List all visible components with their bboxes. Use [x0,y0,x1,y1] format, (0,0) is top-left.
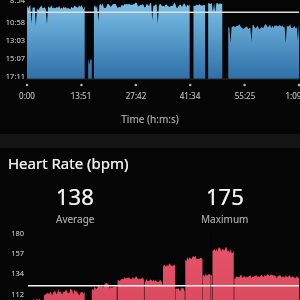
staticText: Heart Rate (bpm) [8,153,129,173]
staticText: 15:07 [0,53,25,63]
staticText: 0:00 [5,90,49,101]
staticText: 41:34 [168,90,212,101]
button[interactable]: 8:54 [0,0,300,134]
staticText: 55:25 [223,90,267,101]
staticText: Time (h:m:s) [0,112,300,126]
staticText: 13:03 [0,35,25,45]
button[interactable]: Heart Rate (bpm) [0,148,300,173]
button[interactable]: Maximum 175 bpm [150,181,300,226]
staticText: 157 [0,248,24,258]
staticText: 175 [206,181,244,211]
staticText: 27:42 [114,90,158,101]
staticText: Average [56,212,95,226]
staticText: Maximum [201,212,249,226]
staticText: 10:58 [0,17,25,27]
staticText: 8:54 [0,0,25,5]
staticText: 134 [0,268,24,278]
staticText: 138 [56,181,94,211]
staticText: 17:11 [0,71,25,81]
staticText: 112 [0,289,24,299]
staticText: 13:51 [59,90,103,101]
staticText: OnlyFans.com/nicorondet [164,298,298,300]
button[interactable]: Average 138 bpm [0,181,150,226]
staticText: 1:09:16 [277,90,300,101]
staticText: 180 [0,228,24,238]
